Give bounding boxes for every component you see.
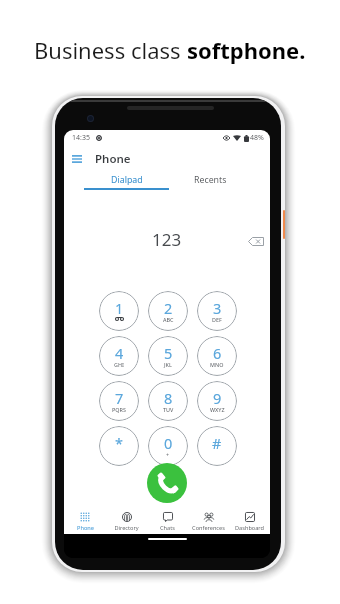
button[interactable]: # (197, 426, 237, 466)
button[interactable]: 0 (148, 426, 188, 466)
button[interactable]: Backspace (245, 230, 267, 252)
button[interactable]: 2 (148, 291, 188, 331)
staticText: Phone (77, 524, 94, 532)
staticText: 48% (250, 133, 264, 143)
button[interactable]: Recents (169, 170, 251, 190)
staticText: 5 (164, 343, 173, 363)
staticText: TUV (163, 406, 174, 413)
staticText: DEF (212, 316, 222, 323)
button[interactable]: Chats (147, 508, 188, 536)
staticText: Phone (95, 151, 131, 167)
button[interactable]: Phone (64, 508, 106, 536)
staticText: * (115, 433, 123, 453)
button[interactable]: Directory (106, 508, 147, 536)
button[interactable]: Conferences (188, 508, 229, 536)
staticText: Conferences (192, 524, 225, 532)
staticText: Dialpad (111, 174, 143, 186)
button[interactable]: Dialpad (84, 170, 169, 190)
staticText: # (212, 433, 222, 453)
button[interactable]: 6 (197, 336, 237, 376)
staticText: 123 (152, 228, 182, 251)
staticText: PQRS (112, 406, 126, 413)
staticText: Dashboard (235, 524, 264, 532)
button[interactable]: Dashboard (229, 508, 270, 536)
button[interactable]: 7 (99, 381, 139, 421)
staticText: ABC (163, 316, 174, 323)
staticText: 0 (164, 433, 173, 453)
staticText: 7 (115, 388, 124, 408)
staticText: + (166, 451, 170, 458)
button[interactable]: * (99, 426, 139, 466)
button[interactable]: 8 (148, 381, 188, 421)
button[interactable]: 9 (197, 381, 237, 421)
staticText: MNO (210, 361, 224, 368)
staticText: WXYZ (210, 406, 225, 413)
staticText: Business class (34, 35, 187, 65)
button[interactable]: 5 (148, 336, 188, 376)
staticText: 2 (164, 298, 173, 318)
staticText: 14:35 (72, 133, 90, 143)
staticText: 9 (213, 388, 222, 408)
button[interactable]: 1 (99, 291, 139, 331)
staticText: softphone. (187, 35, 306, 65)
staticText: Recents (194, 174, 227, 186)
staticText: 3 (213, 298, 222, 318)
staticText: 4 (115, 343, 124, 363)
staticText: 1 (115, 298, 124, 318)
staticText: 6 (213, 343, 222, 363)
staticText: Directory (114, 524, 139, 532)
button[interactable]: Call (147, 463, 187, 503)
staticText: JKL (164, 361, 172, 368)
staticText: Chats (160, 524, 175, 532)
staticText: 8 (164, 388, 173, 408)
button[interactable]: 4 (99, 336, 139, 376)
staticText: GHI (114, 361, 124, 368)
button[interactable]: 3 (197, 291, 237, 331)
button[interactable]: Menu (68, 150, 86, 168)
